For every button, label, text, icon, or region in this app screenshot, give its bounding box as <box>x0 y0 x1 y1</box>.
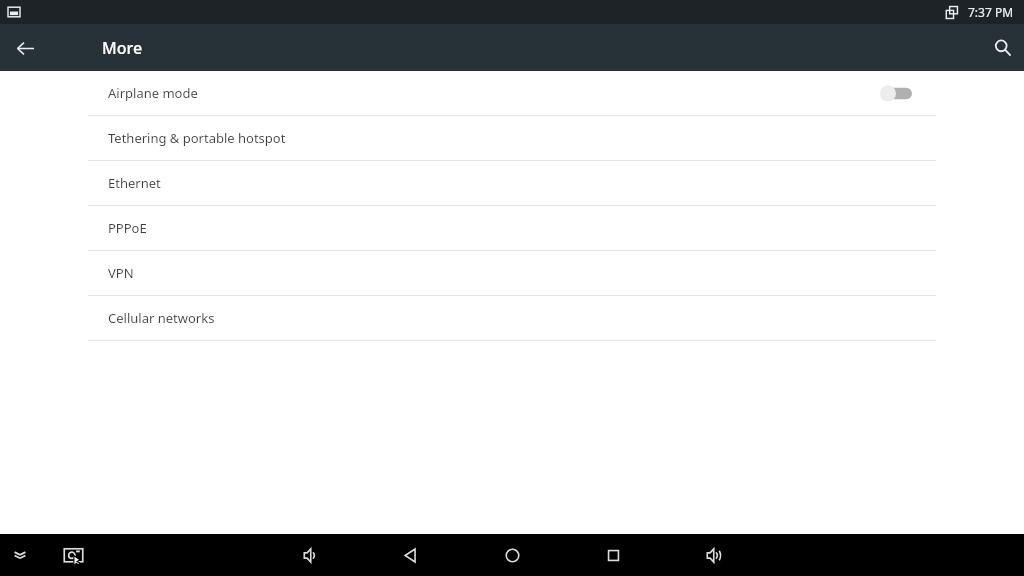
staticText: VPN <box>108 264 134 282</box>
button[interactable]: Home <box>495 538 529 572</box>
staticText: Cellular networks <box>108 309 215 327</box>
button[interactable]: Back <box>5 28 45 68</box>
staticText: 7:37 PM <box>968 4 1014 20</box>
button[interactable]: Airplane mode <box>873 78 919 108</box>
button[interactable]: Tethering & portable hotspot <box>0 116 1024 160</box>
button[interactable]: Recent apps <box>596 538 630 572</box>
button[interactable]: Search <box>983 28 1023 68</box>
button[interactable]: Airplane mode <box>0 71 1024 115</box>
button[interactable]: VPN <box>0 251 1024 295</box>
button[interactable]: Volume down <box>294 538 328 572</box>
button[interactable]: PPPoE <box>0 206 1024 250</box>
staticText: Ethernet <box>108 174 161 192</box>
staticText: Tethering & portable hotspot <box>108 129 286 147</box>
button[interactable]: Screenshot <box>57 539 89 571</box>
button[interactable]: Cellular networks <box>0 296 1024 340</box>
staticText: PPPoE <box>108 219 147 237</box>
button[interactable]: Hide navigation bar <box>4 539 36 571</box>
staticText: More <box>102 37 143 59</box>
staticText: Airplane mode <box>108 84 198 102</box>
button[interactable]: Back <box>393 538 427 572</box>
button[interactable]: Ethernet <box>0 161 1024 205</box>
button[interactable]: Volume up <box>697 538 731 572</box>
